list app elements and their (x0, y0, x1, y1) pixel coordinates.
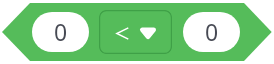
button[interactable]: 0 (32, 12, 89, 52)
staticText: 0 (205, 16, 219, 47)
button[interactable]: 0 (183, 12, 240, 52)
button[interactable]: Previous period, select (99, 10, 172, 54)
staticText: 0 (54, 16, 68, 47)
